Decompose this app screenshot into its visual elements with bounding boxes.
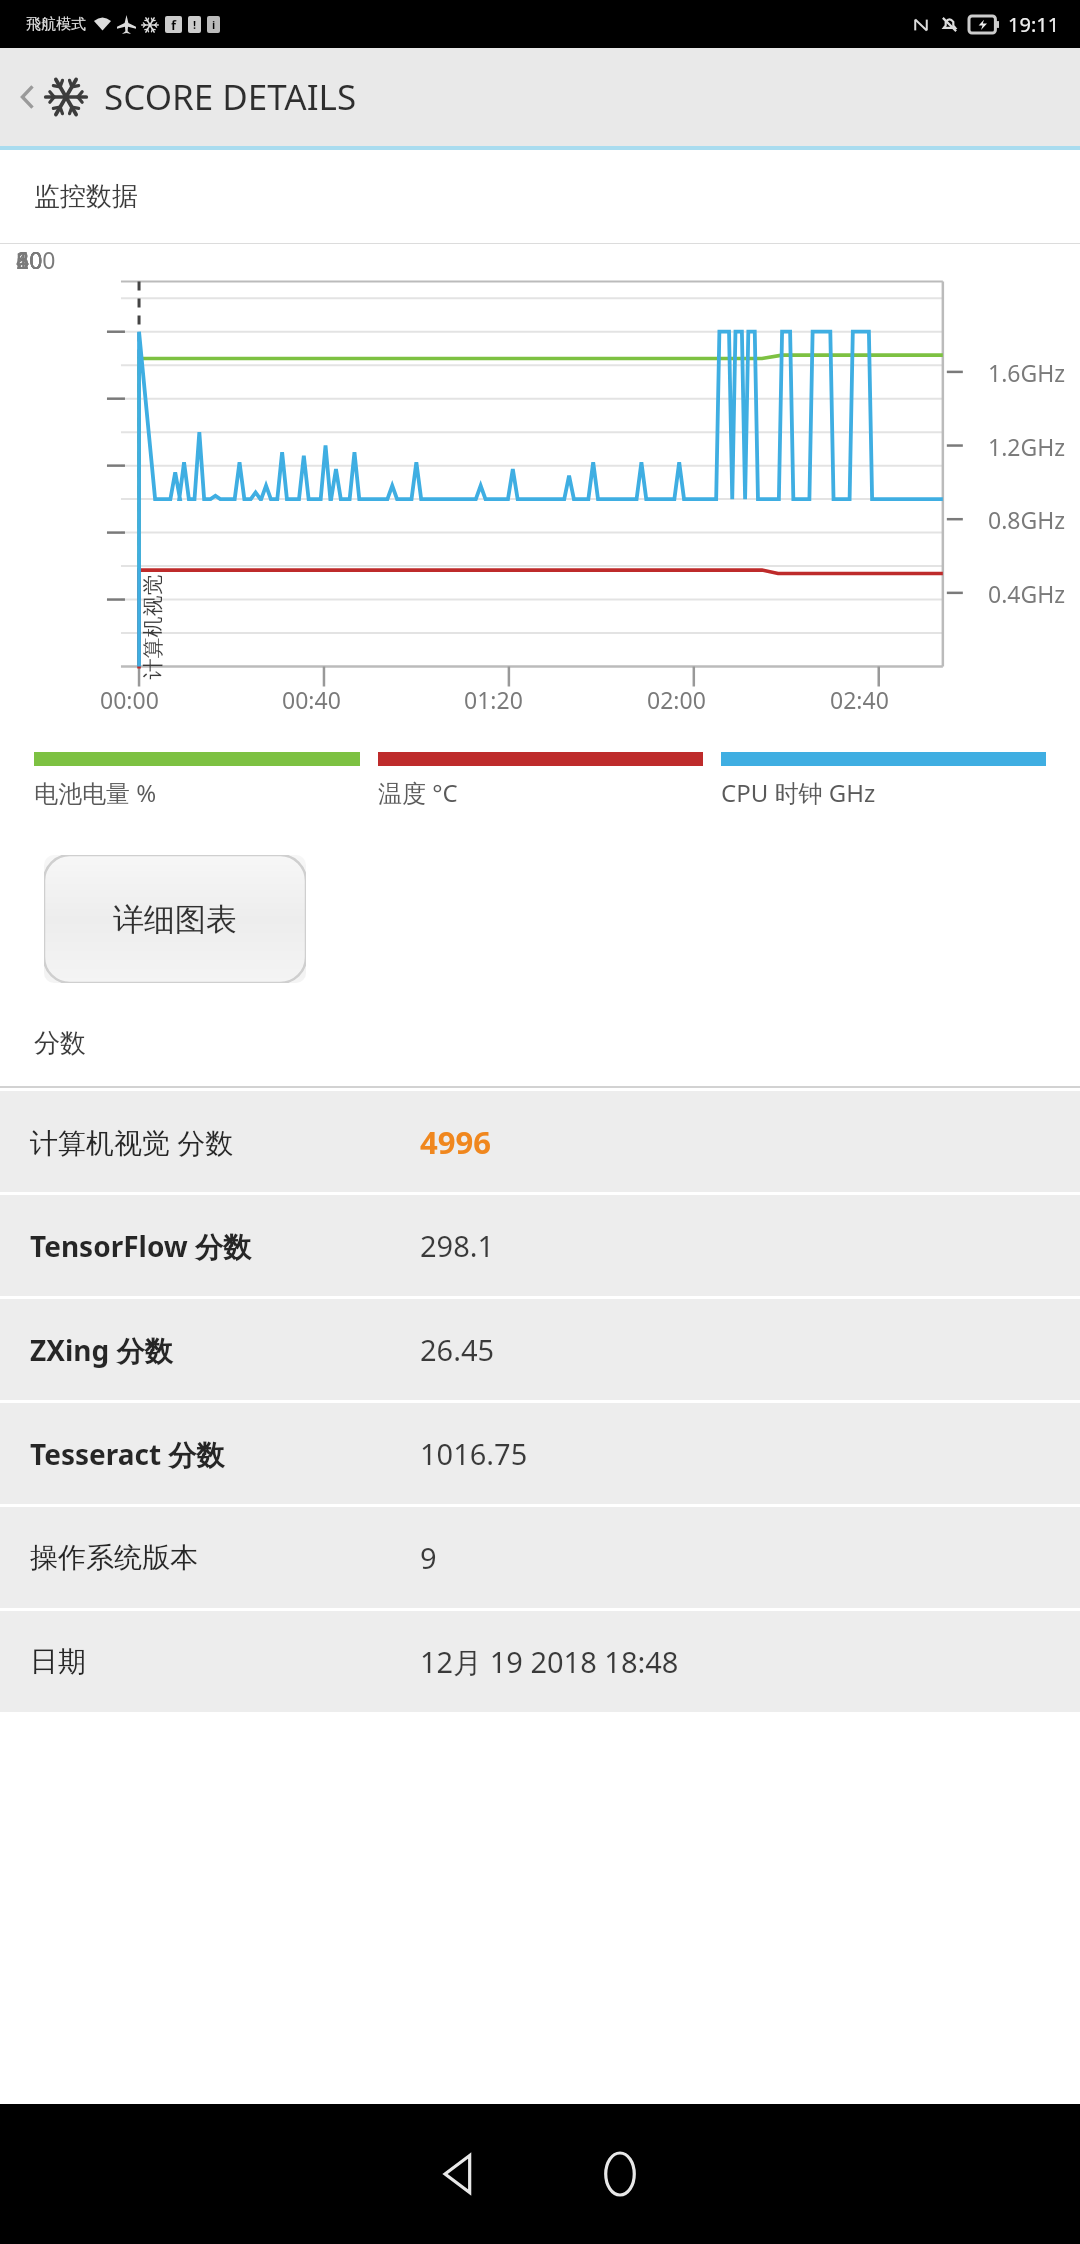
staticText: 4996	[420, 1121, 491, 1163]
staticText: 60	[16, 244, 43, 275]
button[interactable]: Home	[565, 2119, 675, 2229]
staticText: 02:00	[647, 684, 706, 715]
staticText: 分数	[34, 1027, 86, 1060]
staticText: 00:00	[100, 684, 159, 715]
button[interactable]: TensorFlow 分数	[0, 1195, 1080, 1296]
staticText: 20	[16, 244, 43, 275]
staticText: CPU 时钟 GHz	[721, 776, 876, 809]
staticText: 40	[16, 244, 43, 275]
staticText: 00:40	[282, 684, 341, 715]
button[interactable]: Back	[0, 73, 363, 121]
staticText: 计算机视觉 分数	[30, 1123, 234, 1161]
button[interactable]: 日期	[0, 1611, 1080, 1712]
staticText: f	[171, 16, 177, 33]
staticText: SCORE DETAILS	[104, 73, 357, 121]
staticText: 计算机视觉	[139, 574, 165, 679]
staticText: 电池电量 %	[34, 776, 157, 809]
staticText: 02:40	[830, 684, 889, 715]
staticText: 1016.75	[420, 1434, 528, 1473]
staticText: 操作系统版本	[30, 1540, 198, 1575]
staticText: TensorFlow 分数	[30, 1227, 252, 1265]
staticText: 0.8GHz	[988, 504, 1066, 535]
staticText: 1.6GHz	[988, 357, 1066, 388]
staticText: 01:20	[464, 684, 523, 715]
staticText: 监控数据	[34, 180, 138, 213]
staticText: !	[193, 17, 197, 32]
staticText: 日期	[30, 1644, 86, 1679]
staticText: 26.45	[420, 1330, 495, 1369]
button[interactable]: Back	[405, 2119, 515, 2229]
staticText: 80	[16, 244, 43, 275]
staticText: 1.2GHz	[988, 431, 1066, 462]
staticText: i	[212, 17, 216, 32]
staticText: 详细图表	[113, 900, 237, 939]
staticText: 9	[420, 1538, 437, 1577]
staticText: 0.4GHz	[988, 578, 1066, 609]
staticText: 100	[16, 244, 56, 275]
button[interactable]: 详细图表	[44, 855, 306, 983]
staticText: 温度 °C	[378, 776, 458, 809]
button[interactable]: Tesseract 分数	[0, 1403, 1080, 1504]
staticText: 飛航模式	[26, 15, 86, 34]
button[interactable]: ZXing 分数	[0, 1299, 1080, 1400]
staticText: 12月 19 2018 18:48	[420, 1642, 679, 1682]
button[interactable]: 计算机视觉 分数	[0, 1091, 1080, 1192]
button[interactable]: 操作系统版本	[0, 1507, 1080, 1608]
staticText: 19:11	[1008, 11, 1060, 38]
staticText: ZXing 分数	[30, 1331, 173, 1369]
staticText: 298.1	[420, 1226, 495, 1265]
staticText: Tesseract 分数	[30, 1435, 225, 1473]
